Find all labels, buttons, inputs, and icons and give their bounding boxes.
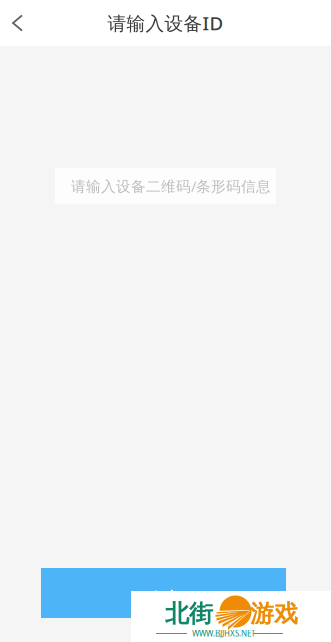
button[interactable]: Back [0, 1, 36, 45]
button[interactable]: 确定 [41, 568, 286, 618]
staticText: 确定 [144, 587, 182, 610]
staticText: 请输入设备二维码/条形码信息 [71, 176, 271, 196]
staticText: 北街 [165, 599, 213, 628]
staticText: 游戏 [250, 599, 298, 628]
staticText: WWW.BJJHXS.NET [192, 628, 255, 639]
staticText: 请输入设备ID [107, 11, 223, 35]
